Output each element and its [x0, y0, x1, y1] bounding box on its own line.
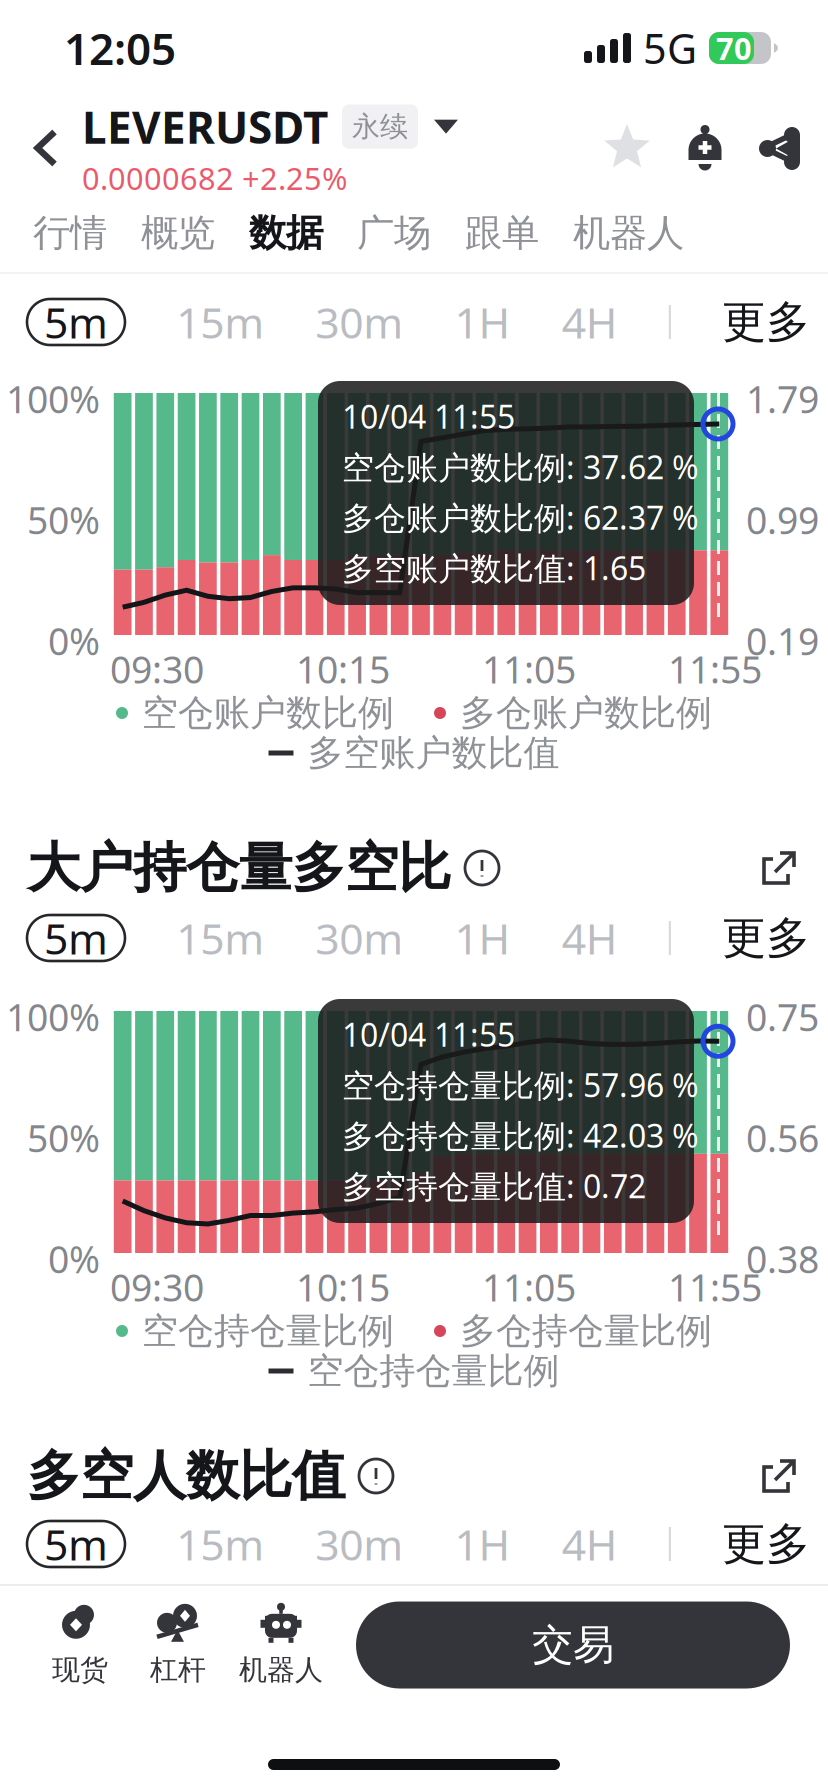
button[interactable]: 15m [176, 910, 264, 966]
staticText: 100% [6, 374, 100, 424]
button[interactable]: Open in full screen [750, 839, 808, 897]
staticText: 杠杆 [150, 1653, 206, 1687]
staticText: 更多 [722, 295, 810, 349]
button[interactable]: 更多 [722, 911, 810, 965]
button[interactable]: 5m [27, 1521, 125, 1567]
staticText: 10/04 11:55 [342, 1013, 515, 1055]
staticText: 11:05 [482, 644, 576, 694]
staticText: 永续 [352, 109, 408, 144]
button[interactable]: 15m [176, 294, 264, 350]
staticText: 多空账户数比值: 1.65 [342, 546, 646, 589]
staticText: 70 [716, 28, 752, 68]
staticText: 多仓持仓量比例: 42.03 % [342, 1114, 699, 1156]
button[interactable]: 杠杆 [129, 1595, 227, 1695]
staticText: 0.75 [746, 992, 819, 1042]
button[interactable]: 5m [27, 299, 125, 345]
staticText: 多空人数比值 [27, 1443, 345, 1509]
button[interactable]: Open in full screen [750, 1447, 808, 1505]
staticText: 广场 [357, 210, 431, 256]
staticText: 概览 [141, 210, 215, 256]
staticText: 4H [562, 294, 618, 350]
button[interactable]: 4H [562, 1516, 618, 1572]
staticText: 空仓持仓量比例 [142, 1309, 394, 1353]
staticText: 0% [48, 1234, 100, 1284]
staticText: 现货 [52, 1653, 108, 1687]
staticText: 5m [44, 1516, 108, 1572]
staticText: 30m [315, 910, 403, 966]
staticText: 多仓账户数比例: 62.37 % [342, 496, 699, 538]
staticText: 15m [176, 1516, 264, 1572]
staticText: 0.99 [746, 495, 819, 545]
staticText: 1H [454, 294, 510, 350]
staticText: 30m [315, 294, 403, 350]
button[interactable]: 30m [315, 294, 403, 350]
staticText: 1H [454, 910, 510, 966]
staticText: 行情 [33, 210, 107, 256]
button[interactable]: 4H [562, 294, 618, 350]
staticText: 更多 [722, 1517, 810, 1571]
staticText: 4H [562, 910, 618, 966]
staticText: 09:30 [110, 644, 204, 694]
button[interactable]: 机器人 [227, 1595, 335, 1695]
button[interactable]: 行情 [16, 200, 124, 266]
button[interactable]: 4H [562, 910, 618, 966]
staticText: 0.38 [746, 1234, 819, 1284]
button[interactable]: 更多 [722, 295, 810, 349]
button[interactable]: 广场 [340, 200, 448, 266]
button[interactable]: 1H [454, 1516, 510, 1572]
button[interactable]: 更多 [722, 1517, 810, 1571]
staticText: 11:55 [668, 644, 762, 694]
staticText: 多仓账户数比例 [460, 691, 712, 735]
staticText: 机器人 [573, 210, 684, 256]
staticText: 5m [44, 294, 108, 350]
staticText: 空仓账户数比例: 37.62 % [342, 445, 699, 488]
staticText: 空仓持仓量比例: 57.96 % [342, 1063, 699, 1106]
staticText: 数据 [249, 210, 323, 256]
staticText: 多仓持仓量比例 [460, 1309, 712, 1353]
staticText: 1H [454, 1516, 510, 1572]
staticText: 0.56 [746, 1113, 819, 1163]
staticText: 0.0000682 +2.25% [82, 158, 347, 199]
button[interactable]: Price alert [666, 96, 744, 200]
button[interactable]: 交易 [356, 1601, 790, 1688]
staticText: 跟单 [465, 210, 539, 256]
staticText: 多空账户数比值 [307, 731, 559, 775]
button[interactable]: 跟单 [448, 200, 556, 266]
staticText: 大户持仓量多空比 [27, 835, 451, 901]
staticText: 1.79 [746, 374, 819, 424]
button[interactable]: 5m [27, 915, 125, 961]
button[interactable]: 1H [454, 294, 510, 350]
staticText: 11:05 [482, 1262, 576, 1312]
staticText: 0% [48, 616, 100, 666]
staticText: 100% [6, 992, 100, 1042]
button[interactable]: 数据 [232, 200, 340, 266]
staticText: 30m [315, 1516, 403, 1572]
staticText: 机器人 [239, 1653, 323, 1687]
button[interactable]: 15m [176, 1516, 264, 1572]
staticText: 10:15 [296, 1262, 390, 1312]
staticText: 5G [643, 21, 697, 75]
staticText: 多空持仓量比值: 0.72 [342, 1164, 646, 1207]
staticText: LEVERUSDT [82, 97, 328, 156]
staticText: 更多 [722, 911, 810, 965]
button[interactable]: Add to favorites [588, 96, 666, 200]
staticText: 空仓持仓量比例 [307, 1349, 559, 1393]
button[interactable]: Share [744, 96, 816, 200]
staticText: 5m [44, 910, 108, 966]
staticText: 10:15 [296, 644, 390, 694]
button[interactable]: 30m [315, 1516, 403, 1572]
staticText: 15m [176, 294, 264, 350]
staticText: 11:55 [668, 1262, 762, 1312]
button[interactable]: 1H [454, 910, 510, 966]
staticText: 09:30 [110, 1262, 204, 1312]
staticText: 空仓账户数比例 [142, 691, 394, 735]
staticText: 50% [27, 1113, 100, 1163]
staticText: 12:05 [64, 19, 176, 77]
staticText: 4H [562, 1516, 618, 1572]
button[interactable]: 概览 [124, 200, 232, 266]
button[interactable]: Back [10, 96, 82, 200]
staticText: 0.19 [746, 616, 819, 666]
button[interactable]: 30m [315, 910, 403, 966]
button[interactable]: 机器人 [556, 200, 701, 266]
button[interactable]: 现货 [31, 1595, 129, 1695]
